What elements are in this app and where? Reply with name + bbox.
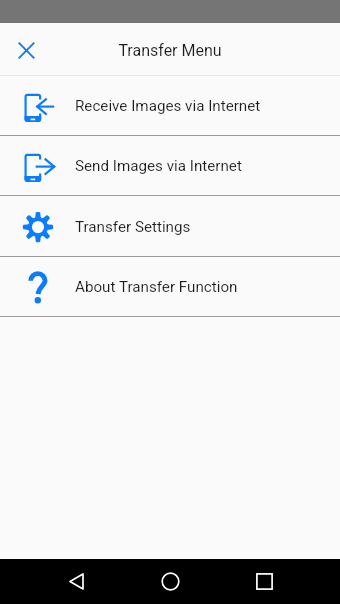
staticText: Receive Images via Internet <box>75 97 261 115</box>
button[interactable]: Receive Images via Internet <box>0 76 340 136</box>
staticText: About Transfer Function <box>75 278 238 296</box>
button[interactable]: Recent apps <box>217 559 311 604</box>
button[interactable]: About Transfer Function <box>0 257 340 317</box>
staticText: Send Images via Internet <box>75 157 242 175</box>
staticText: Transfer Settings <box>75 218 191 236</box>
button[interactable]: Close <box>0 24 52 76</box>
button[interactable]: Transfer Settings <box>0 196 340 257</box>
staticText: Transfer Menu <box>118 41 222 60</box>
button[interactable]: Send Images via Internet <box>0 136 340 196</box>
button[interactable]: Home <box>123 559 217 604</box>
button[interactable]: Back <box>29 559 123 604</box>
